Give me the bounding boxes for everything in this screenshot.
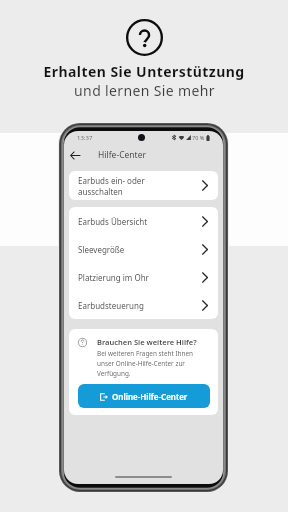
staticText: Earbuds ein- oder ausschalten	[78, 175, 145, 197]
button[interactable]: Sleevegröße	[69, 235, 218, 263]
button[interactable]: Platzierung im Ohr	[69, 263, 218, 291]
staticText: 70 %	[192, 134, 205, 141]
staticText: Earbuds Übersicht	[78, 216, 148, 227]
button[interactable]: Earbudsteuerung	[69, 291, 218, 319]
staticText: Online-Hilfe-Center	[112, 391, 188, 402]
button[interactable]: Earbuds ein- oder ausschalten	[69, 171, 218, 200]
staticText: 13:37	[77, 134, 93, 142]
staticText: Erhalten Sie Unterstützung	[43, 62, 245, 81]
staticText: Hilfe-Center	[98, 149, 146, 161]
staticText: und lernen Sie mehr	[74, 81, 215, 100]
staticText: Bei weiteren Fragen steht Ihnen unser On…	[97, 349, 197, 377]
staticText: Earbudsteuerung	[78, 300, 144, 311]
staticText: Sleevegröße	[78, 244, 125, 255]
staticText: Platzierung im Ohr	[78, 272, 149, 283]
button[interactable]: Back	[70, 150, 81, 161]
staticText: Brauchen Sie weitere Hilfe?	[97, 337, 197, 347]
button[interactable]: Online-Hilfe-Center	[78, 384, 210, 408]
button[interactable]: Earbuds Übersicht	[69, 207, 218, 235]
